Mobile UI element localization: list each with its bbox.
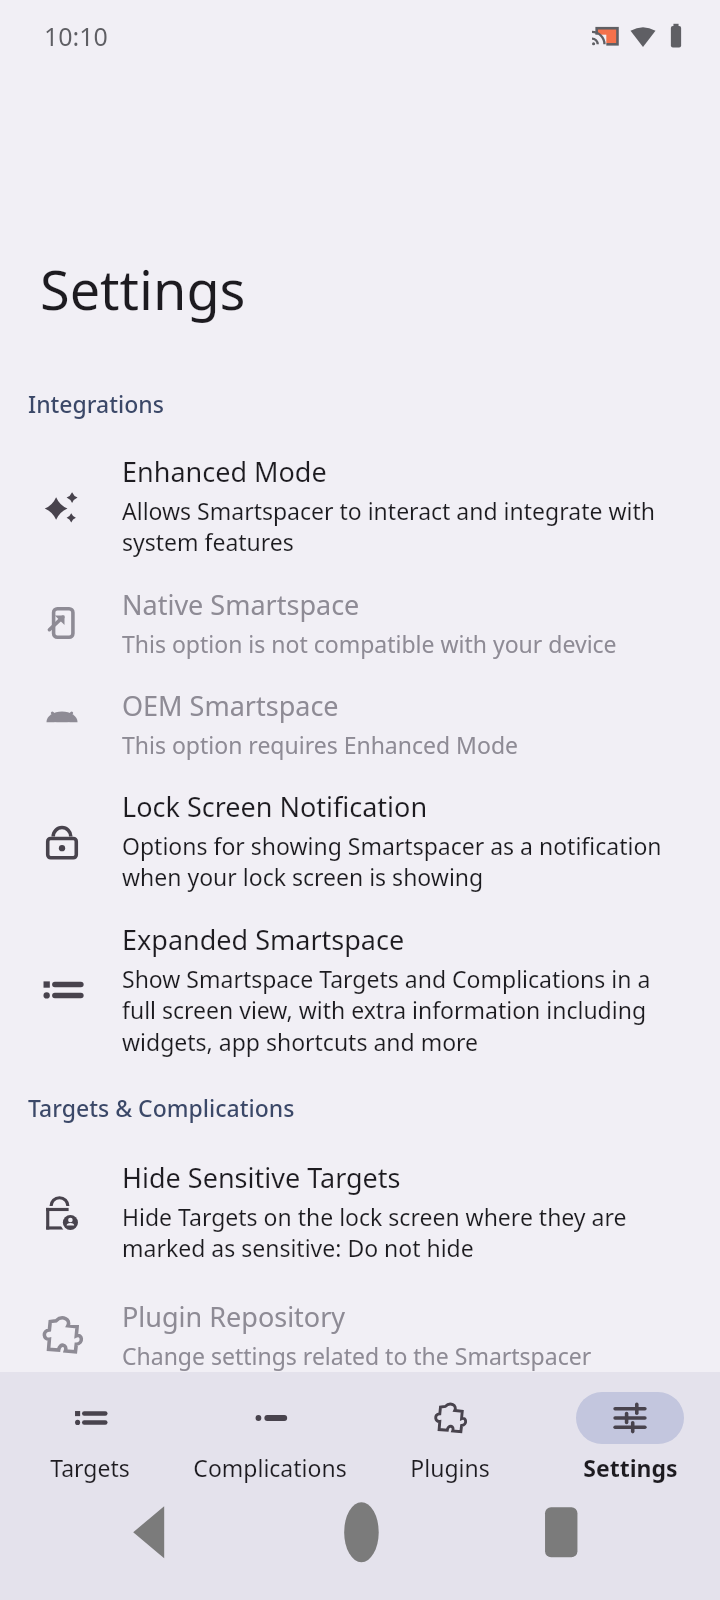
button[interactable]: Targets <box>0 1372 180 1494</box>
staticText: Plugin Repository <box>122 1298 346 1335</box>
staticText: Options for showing Smartspacer as a not… <box>122 830 690 893</box>
staticText: 10:10 <box>44 19 108 53</box>
button[interactable]: Settings <box>540 1372 720 1494</box>
button[interactable]: Plugins <box>360 1372 540 1494</box>
button[interactable]: Expanded Smartspace <box>0 921 720 1058</box>
staticText: This option requires Enhanced Mode <box>122 729 519 760</box>
staticText: Settings <box>583 1452 678 1483</box>
staticText: Expanded Smartspace <box>122 921 405 958</box>
button[interactable]: Plugin Repository <box>0 1298 720 1371</box>
button[interactable]: Complications <box>180 1372 360 1494</box>
staticText: OEM Smartspace <box>122 687 339 724</box>
button[interactable]: OEM Smartspace <box>0 687 720 760</box>
staticText: Enhanced Mode <box>122 453 327 490</box>
staticText: Settings <box>40 252 246 326</box>
staticText: This option is not compatible with your … <box>122 628 617 659</box>
staticText: Hide Sensitive Targets <box>122 1159 401 1196</box>
button[interactable]: Hide Sensitive Targets <box>0 1159 720 1264</box>
staticText: Native Smartspace <box>122 586 360 623</box>
staticText: Show Smartspace Targets and Complication… <box>122 963 690 1058</box>
staticText: Lock Screen Notification <box>122 788 428 825</box>
staticText: Plugins <box>410 1452 490 1483</box>
staticText: Hide Targets on the lock screen where th… <box>122 1201 690 1264</box>
button[interactable]: Lock Screen Notification <box>0 788 720 893</box>
staticText: Change settings related to the Smartspac… <box>122 1340 592 1371</box>
staticText: Complications <box>193 1452 347 1483</box>
button[interactable]: Enhanced Mode <box>0 453 720 558</box>
staticText: Targets & Complications <box>28 1092 295 1123</box>
button[interactable]: Native Smartspace <box>0 586 720 659</box>
staticText: Allows Smartspacer to interact and integ… <box>122 495 690 558</box>
staticText: Targets <box>50 1452 130 1483</box>
staticText: Integrations <box>28 388 164 419</box>
